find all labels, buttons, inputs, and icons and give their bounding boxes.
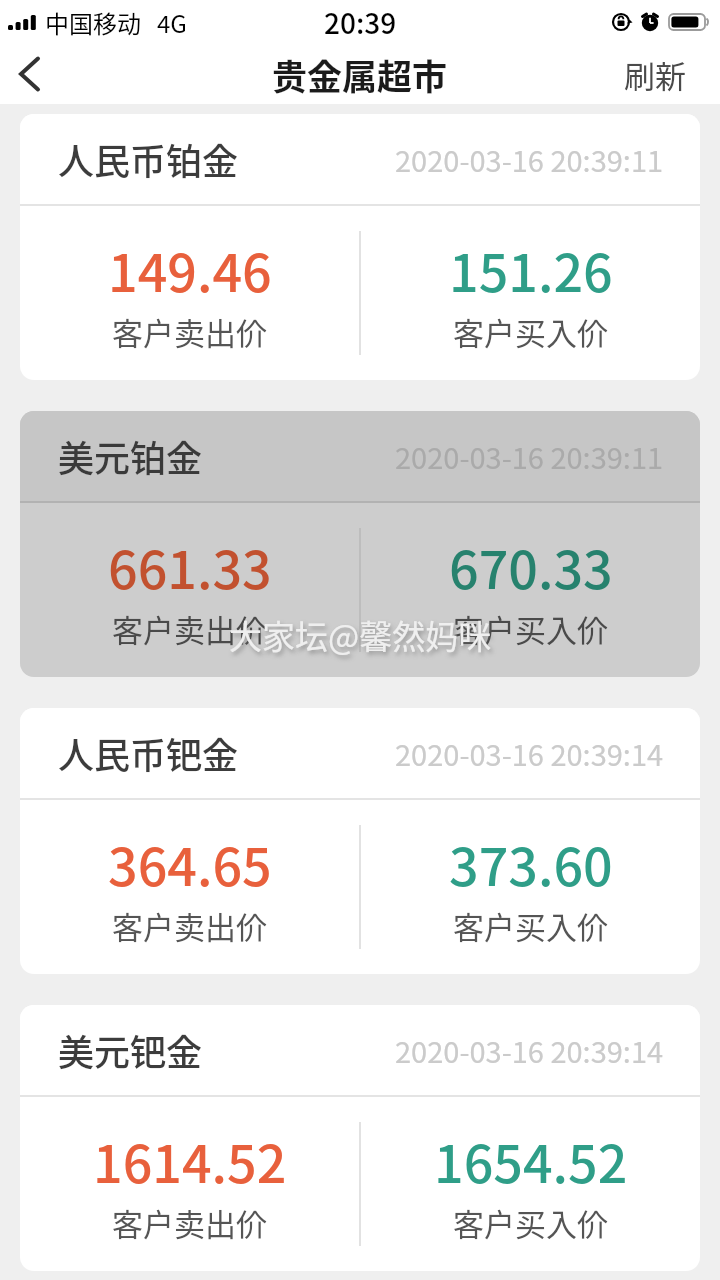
staticText: 2020-03-16 20:39:11 bbox=[395, 138, 664, 180]
staticText: 大家坛@馨然妈咪 bbox=[229, 611, 492, 659]
staticText: 373.60 bbox=[449, 826, 613, 901]
staticText: 670.33 bbox=[449, 529, 613, 604]
staticText: 2020-03-16 20:39:14 bbox=[395, 732, 664, 774]
staticText: 中国移动 bbox=[45, 5, 141, 40]
staticText: 客户买入价 bbox=[453, 309, 608, 354]
staticText: 661.33 bbox=[108, 529, 272, 604]
staticText: 美元铂金 bbox=[58, 430, 203, 482]
staticText: 刷新 bbox=[624, 52, 686, 97]
staticText: 客户买入价 bbox=[453, 903, 608, 948]
staticText: 客户卖出价 bbox=[112, 309, 267, 354]
staticText: 151.26 bbox=[449, 232, 613, 307]
button[interactable]: 刷新 bbox=[624, 52, 686, 97]
staticText: 1654.52 bbox=[434, 1123, 628, 1198]
staticText: 客户买入价 bbox=[453, 1200, 608, 1245]
button[interactable]: 美元钯金 bbox=[20, 1005, 700, 1271]
staticText: 1614.52 bbox=[93, 1123, 287, 1198]
staticText: 客户卖出价 bbox=[112, 606, 267, 651]
staticText: 客户卖出价 bbox=[112, 903, 267, 948]
button[interactable] bbox=[0, 44, 60, 104]
button[interactable]: 人民币铂金 bbox=[20, 114, 700, 380]
staticText: 149.46 bbox=[108, 232, 272, 307]
staticText: 客户买入价 bbox=[453, 606, 608, 651]
staticText: 贵金属超市 bbox=[272, 49, 448, 100]
staticText: 364.65 bbox=[108, 826, 272, 901]
staticText: 人民币钯金 bbox=[58, 727, 239, 779]
staticText: 客户卖出价 bbox=[112, 1200, 267, 1245]
button[interactable]: 人民币钯金 bbox=[20, 708, 700, 974]
staticText: 美元钯金 bbox=[58, 1024, 203, 1076]
staticText: 人民币铂金 bbox=[58, 133, 239, 185]
staticText: 2020-03-16 20:39:11 bbox=[395, 435, 664, 477]
staticText: 2020-03-16 20:39:14 bbox=[395, 1029, 664, 1071]
button[interactable]: 美元铂金 bbox=[20, 411, 700, 677]
staticText: 4G bbox=[157, 5, 187, 40]
staticText: 20:39 bbox=[324, 2, 397, 43]
